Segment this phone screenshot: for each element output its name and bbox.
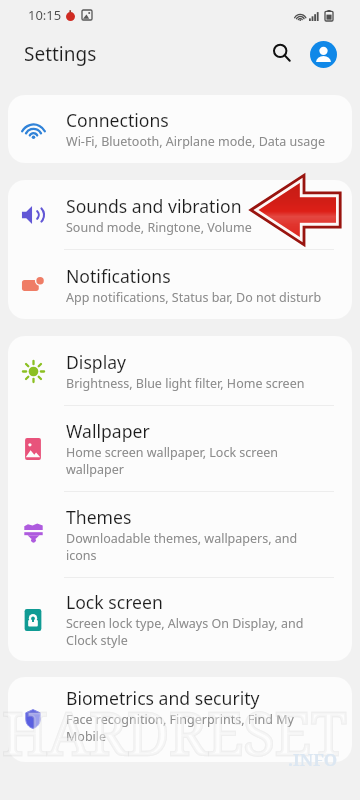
staticText: Sound mode, Ringtone, Volume [66,219,252,236]
button[interactable]: Account [310,41,337,68]
staticText: Display [66,350,127,374]
staticText: App notifications, Status bar, Do not di… [66,289,322,306]
button[interactable]: Sounds and vibration [8,180,352,249]
staticText: HARDRESET [2,693,347,772]
staticText: HARDRESET [2,693,347,772]
staticText: 10:15 [28,6,62,24]
button[interactable]: Biometrics and security [8,677,352,762]
staticText: Wi-Fi, Bluetooth, Airplane mode, Data us… [66,133,326,150]
staticText: Lock screen [66,590,163,614]
button[interactable]: Themes [8,492,352,577]
staticText: Sounds and vibration [66,194,242,218]
staticText: Biometrics and security [66,686,260,710]
button[interactable]: Lock screen [8,578,352,661]
staticText: Notifications [66,264,171,288]
button[interactable]: Notifications [8,250,352,319]
staticText: Wallpaper [66,419,150,443]
button[interactable]: Display [8,336,352,405]
button[interactable]: Search [263,34,300,71]
staticText: Themes [66,505,132,529]
staticText: Settings [24,41,97,67]
staticText: Face recognition, Fingerprints, Find My … [66,711,326,745]
button[interactable]: Connections [8,95,352,163]
staticText: Downloadable themes, wallpapers, and ico… [66,530,326,564]
staticText: Home screen wallpaper, Lock screen wallp… [66,444,326,478]
staticText: Brightness, Blue light filter, Home scre… [66,375,305,392]
staticText: .INFO [288,748,338,771]
staticText: Connections [66,108,169,132]
staticText: Screen lock type, Always On Display, and… [66,615,326,649]
button[interactable]: Wallpaper [8,406,352,491]
